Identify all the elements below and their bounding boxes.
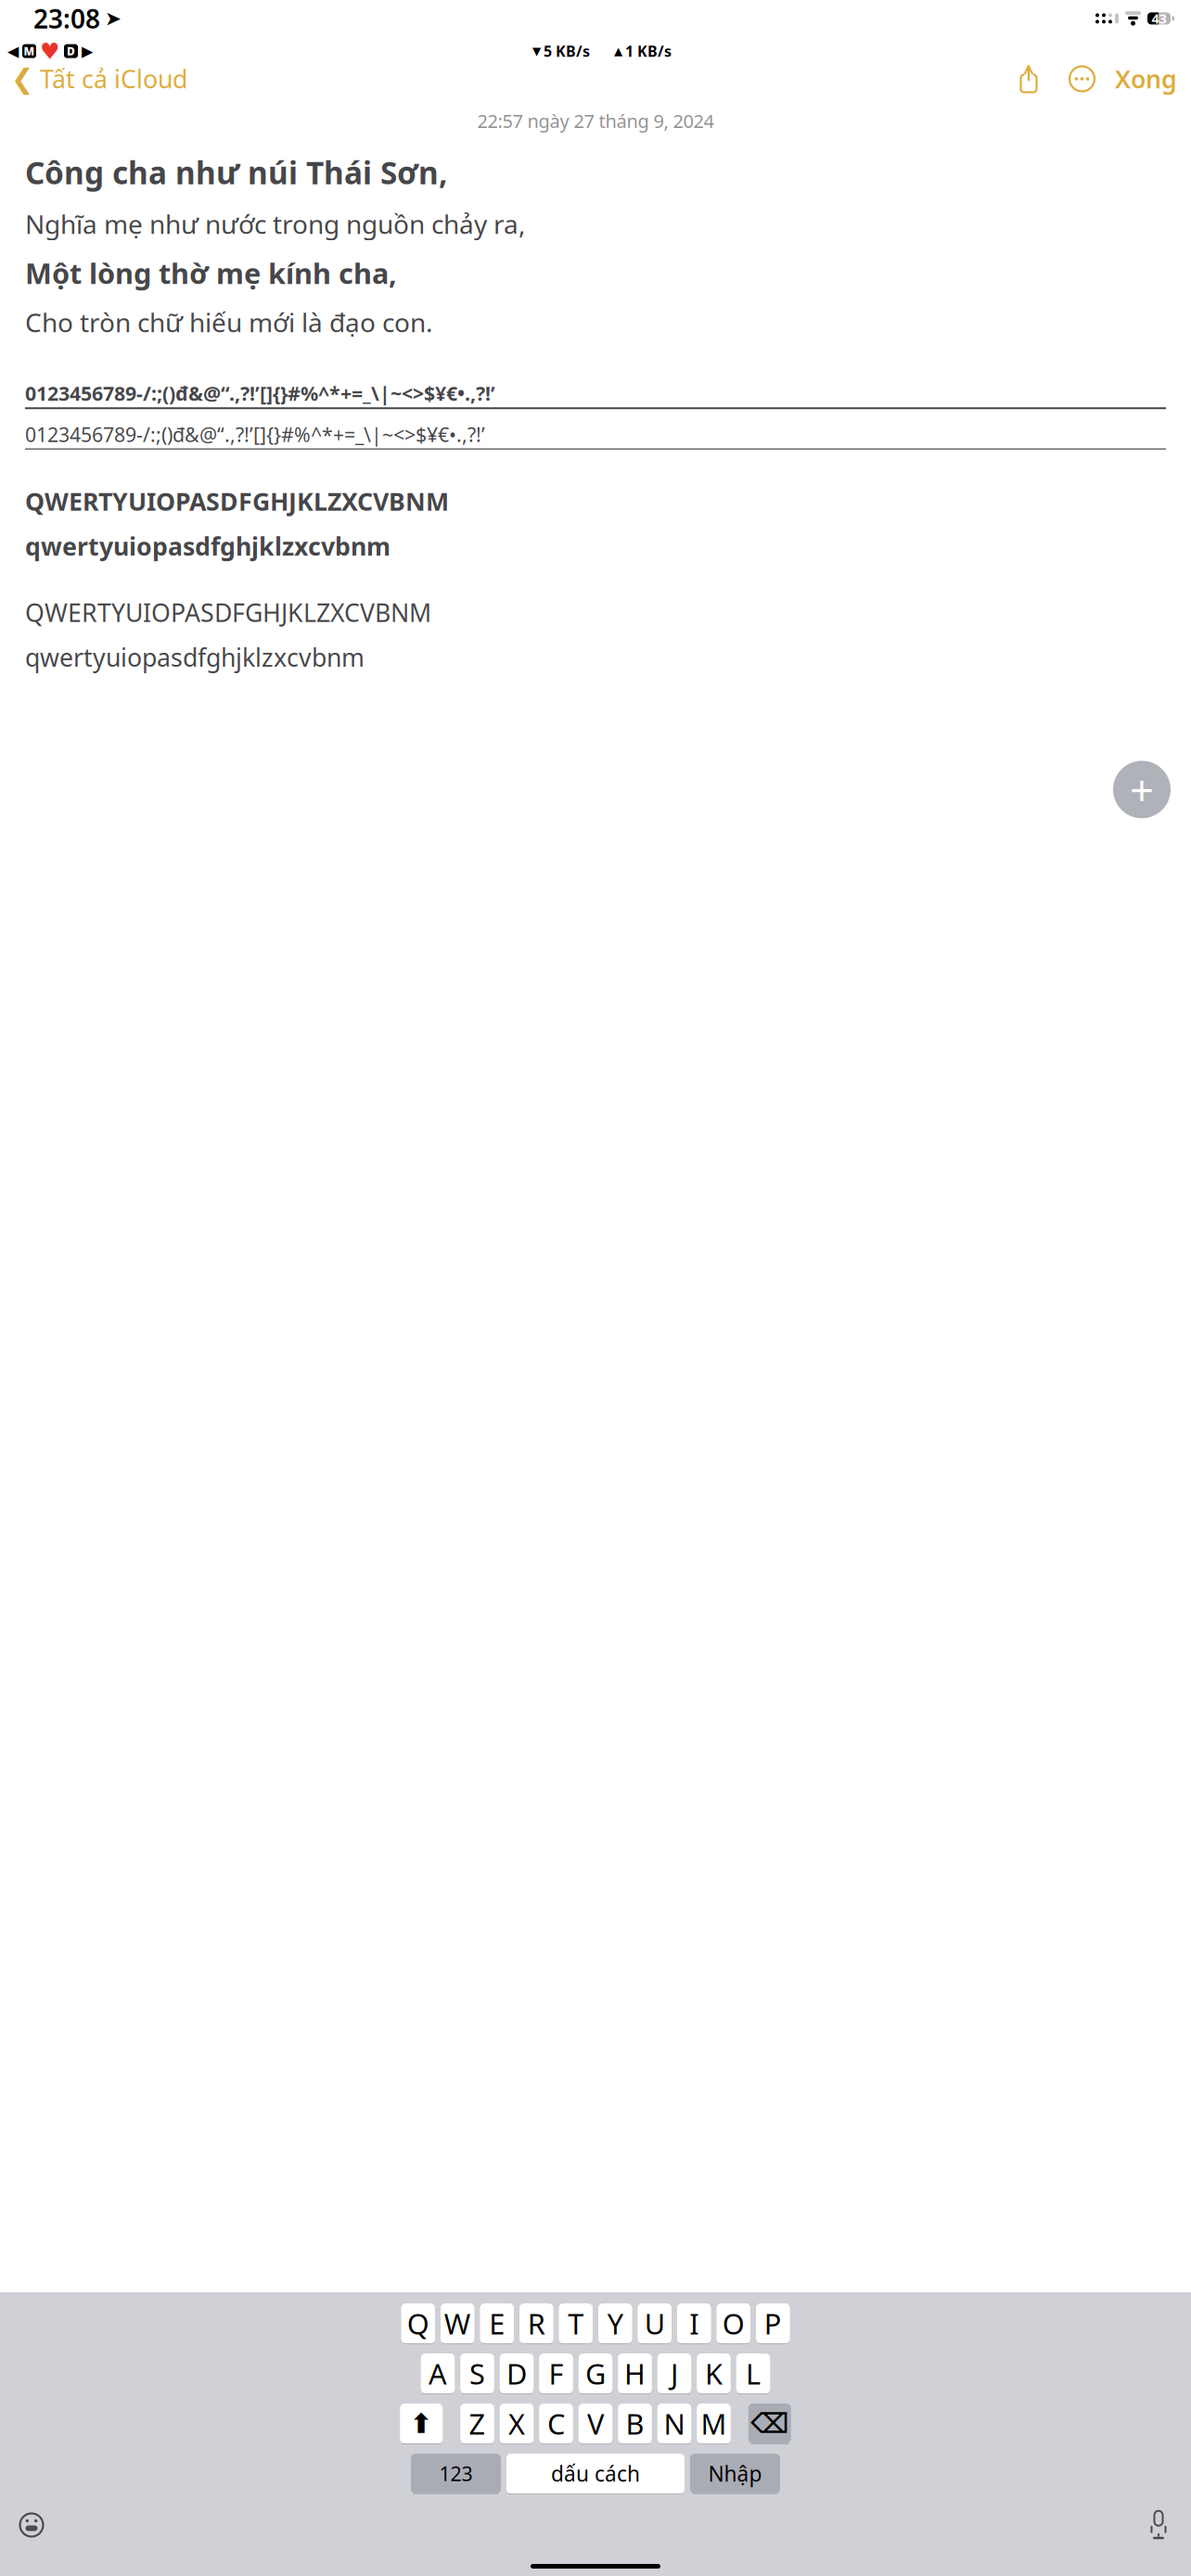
staticText: Nhập <box>708 2460 762 2487</box>
button[interactable]: X <box>500 2404 534 2444</box>
staticText: U <box>644 2304 665 2342</box>
staticText: qwertyuiopasdfghjklzxcvbnm <box>25 641 365 674</box>
button[interactable]: Xoá <box>748 2404 791 2444</box>
button[interactable]: S <box>460 2353 494 2394</box>
staticText: ⌫ <box>751 2408 789 2439</box>
button[interactable]: N <box>657 2404 691 2444</box>
button[interactable]: H <box>618 2353 652 2394</box>
staticText: A <box>429 2354 447 2392</box>
staticText: ♥ <box>40 38 60 64</box>
staticText: G <box>585 2354 606 2392</box>
staticText: 123 <box>439 2460 473 2487</box>
button[interactable]: Shift <box>400 2404 443 2444</box>
button[interactable]: I <box>677 2303 711 2344</box>
staticText: qwertyuiopasdfghjklzxcvbnm <box>25 530 391 562</box>
button[interactable]: Nhập <box>690 2454 780 2494</box>
button[interactable]: R <box>519 2303 553 2344</box>
button[interactable]: O <box>717 2303 750 2344</box>
staticText: QWERTYUIOPASDFGHJKLZXCVBNM <box>25 596 431 629</box>
staticText: J <box>671 2354 678 2392</box>
staticText: C <box>547 2405 565 2442</box>
button[interactable]: D <box>500 2353 534 2394</box>
button[interactable]: C <box>539 2404 573 2444</box>
staticText: 5 KB/s <box>544 41 590 61</box>
staticText: 22:57 ngày 27 tháng 9, 2024 <box>477 108 714 133</box>
button[interactable]: dấu cách <box>506 2454 685 2494</box>
staticText: 0123456789-/:;()đ&@“.,?!’[]{}#%^*+=_\|~<… <box>25 380 495 406</box>
staticText: QWERTYUIOPASDFGHJKLZXCVBNM <box>25 485 449 518</box>
staticText: ◀ <box>7 43 19 60</box>
button[interactable]: Z <box>460 2404 494 2444</box>
staticText: + <box>1130 762 1154 817</box>
staticText: Tất cả iCloud <box>40 62 187 95</box>
button[interactable]: Thêm <box>1066 65 1098 92</box>
button[interactable]: Thêm <box>1113 761 1171 818</box>
button[interactable]: V <box>579 2404 612 2444</box>
staticText: R <box>528 2304 545 2342</box>
staticText: Xong <box>1115 62 1177 95</box>
staticText: Z <box>469 2405 486 2442</box>
staticText: Công cha như núi Thái Sơn, <box>25 152 448 193</box>
staticText: Nghĩa mẹ như nước trong nguồn chảy ra, <box>25 207 526 241</box>
button[interactable]: K <box>697 2353 731 2394</box>
staticText: L <box>746 2354 761 2392</box>
button[interactable]: U <box>638 2303 672 2344</box>
staticText: X <box>508 2405 525 2442</box>
staticText: 1 KB/s <box>625 41 672 61</box>
staticText: ^ <box>1023 58 1034 84</box>
button[interactable]: P <box>756 2303 790 2344</box>
button[interactable]: B <box>618 2404 652 2444</box>
staticText: ▲ <box>614 45 622 57</box>
staticText: ▼ <box>532 45 541 57</box>
staticText: Y <box>607 2304 623 2342</box>
staticText: S <box>469 2354 485 2392</box>
button[interactable]: L <box>736 2353 770 2394</box>
staticText: P <box>764 2304 782 2342</box>
staticText: ➤ <box>105 7 122 30</box>
staticText: O <box>722 2304 745 2342</box>
staticText: V <box>587 2405 604 2442</box>
button[interactable]: Chia sẻ <box>1012 64 1045 93</box>
button[interactable]: ❮ <box>0 58 187 100</box>
button[interactable]: A <box>421 2353 455 2394</box>
staticText: Cho tròn chữ hiếu mới là đạo con. <box>25 305 433 339</box>
staticText: B <box>626 2405 644 2442</box>
button[interactable]: Xong <box>1115 58 1191 100</box>
button[interactable]: Biểu tượng cảm xúc <box>19 2512 45 2538</box>
staticText: M <box>24 44 35 58</box>
staticText: D <box>67 44 75 58</box>
staticText: I <box>689 2304 699 2342</box>
staticText: 0123456789-/:;()đ&@“.,?!’[]{}#%^*+=_\|~<… <box>25 421 485 447</box>
button[interactable]: Đọc chính tả <box>1148 2510 1169 2540</box>
staticText: dấu cách <box>551 2460 640 2487</box>
button[interactable]: J <box>657 2353 691 2394</box>
staticText: Q <box>407 2304 429 2342</box>
staticText: 43 <box>1152 9 1166 27</box>
button[interactable]: M <box>697 2404 731 2444</box>
button[interactable]: E <box>480 2303 514 2344</box>
staticText: ▶ <box>82 43 93 60</box>
staticText: N <box>664 2405 685 2442</box>
staticText: ❮ <box>11 63 34 94</box>
button[interactable]: F <box>539 2353 573 2394</box>
staticText: ⬆ <box>410 2408 433 2439</box>
staticText: W <box>444 2304 471 2342</box>
staticText: F <box>549 2354 563 2392</box>
staticText: H <box>624 2354 646 2392</box>
button[interactable]: Q <box>401 2303 435 2344</box>
button[interactable]: W <box>441 2303 474 2344</box>
button[interactable]: Y <box>598 2303 632 2344</box>
button[interactable]: 123 <box>411 2454 501 2494</box>
staticText: D <box>506 2354 527 2392</box>
staticText: T <box>568 2304 584 2342</box>
staticText: 23:08 <box>33 1 100 36</box>
button[interactable]: T <box>559 2303 593 2344</box>
staticText: Một lòng thờ mẹ kính cha, <box>25 254 397 292</box>
button[interactable]: G <box>579 2353 612 2394</box>
staticText: K <box>705 2354 723 2392</box>
staticText: M <box>701 2405 727 2442</box>
staticText: E <box>489 2304 505 2342</box>
